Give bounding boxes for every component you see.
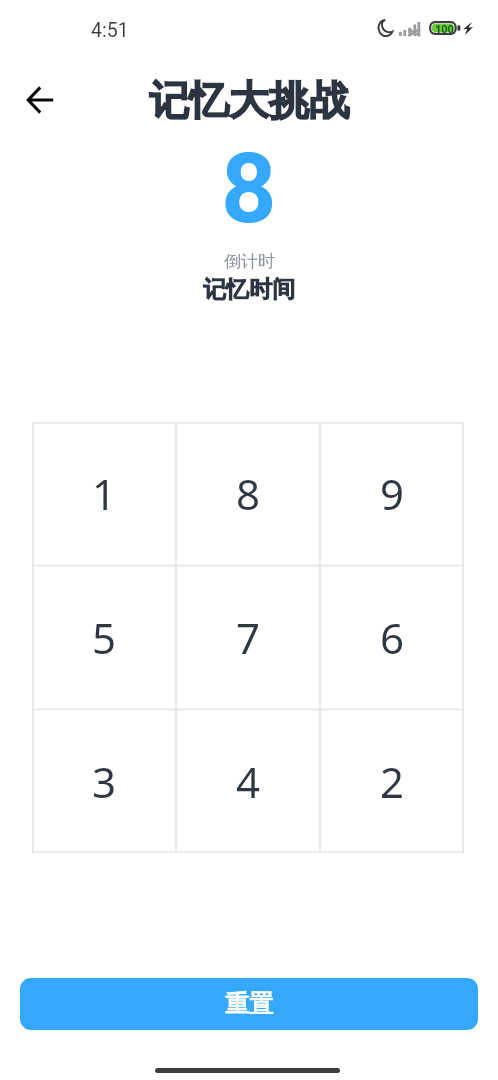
staticText: 3: [92, 753, 117, 810]
button[interactable]: 3: [32, 709, 176, 853]
staticText: 5: [92, 609, 117, 666]
button[interactable]: 2: [320, 709, 464, 853]
staticText: 4:51: [91, 19, 129, 42]
staticText: 倒计时: [224, 251, 275, 272]
staticText: 7: [236, 609, 261, 666]
button[interactable]: 重置: [20, 978, 478, 1030]
button[interactable]: 6: [320, 565, 464, 709]
button[interactable]: 8: [176, 422, 320, 565]
staticText: 6: [380, 609, 405, 666]
staticText: 8: [221, 132, 277, 246]
staticText: 8: [236, 465, 261, 522]
staticText: 9: [380, 465, 405, 522]
button[interactable]: 4: [176, 709, 320, 853]
button[interactable]: 7: [176, 565, 320, 709]
staticText: 1: [92, 465, 117, 522]
staticText: 2: [380, 753, 405, 810]
staticText: 4: [236, 753, 261, 810]
button[interactable]: 5: [32, 565, 176, 709]
staticText: 重置: [225, 989, 273, 1019]
button[interactable]: Back: [18, 78, 62, 122]
button[interactable]: 1: [32, 422, 176, 565]
staticText: 记忆时间: [203, 275, 295, 304]
staticText: 100: [435, 21, 454, 35]
staticText: 记忆大挑战: [149, 75, 349, 125]
button[interactable]: 9: [320, 422, 464, 565]
